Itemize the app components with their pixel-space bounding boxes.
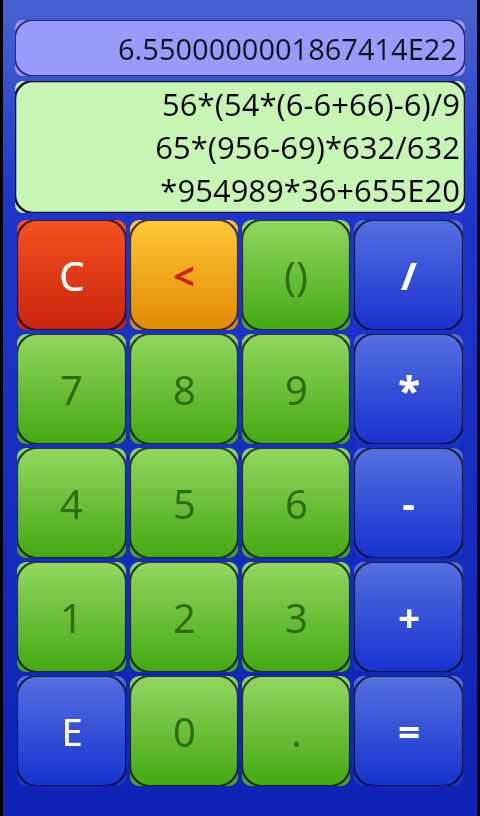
button[interactable]: E [17,676,126,786]
staticText: * [398,362,420,416]
button[interactable]: 5 [130,448,238,558]
staticText: / [401,249,417,301]
button[interactable]: Divide [354,220,463,330]
staticText: 4 [60,476,83,530]
staticText: < [173,249,195,301]
button[interactable]: 6 [242,448,350,558]
staticText: C [59,248,85,302]
button[interactable]: 1 [17,562,126,672]
staticText: = [398,705,420,757]
button[interactable]: 6.5500000001867414E22 [15,20,465,76]
button[interactable]: 3 [242,562,350,672]
button[interactable]: Multiply [354,334,463,444]
staticText: 1 [60,590,83,644]
button[interactable]: 2 [130,562,238,672]
staticText: 56*(54*(6-6+66)-6)/9 65*(956-69)*632/632… [155,83,460,211]
button[interactable]: Add [354,562,463,672]
button[interactable]: 7 [17,334,126,444]
button[interactable]: 56*(54*(6-6+66)-6)/9 65*(956-69)*632/632… [15,81,465,213]
staticText: 9 [285,362,308,416]
staticText: - [402,477,415,529]
staticText: 5 [173,476,196,530]
staticText: () [284,248,308,302]
staticText: 8 [173,362,196,416]
button[interactable]: 9 [242,334,350,444]
button[interactable]: 8 [130,334,238,444]
staticText: 2 [173,590,196,644]
button[interactable]: () [242,220,350,330]
staticText: 3 [285,590,308,644]
staticText: . [291,704,302,758]
staticText: 6 [285,476,308,530]
button[interactable]: . [242,676,350,786]
button[interactable]: 0 [130,676,238,786]
button[interactable]: Subtract [354,448,463,558]
staticText: E [61,705,83,757]
staticText: 6.5500000001867414E22 [117,29,457,68]
button[interactable]: Backspace [130,220,238,330]
button[interactable]: C [17,220,126,330]
staticText: + [398,591,420,643]
staticText: 7 [60,362,83,416]
button[interactable]: 4 [17,448,126,558]
button[interactable]: Equals [354,676,463,786]
staticText: 0 [173,704,196,758]
